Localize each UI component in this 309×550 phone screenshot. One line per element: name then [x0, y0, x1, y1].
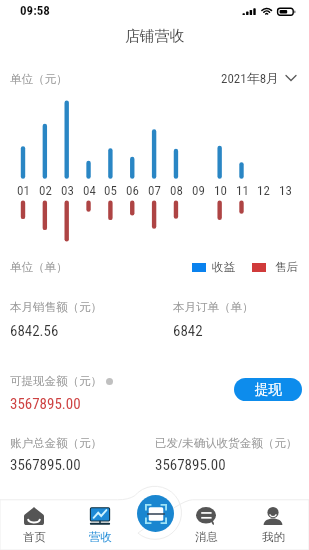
staticText: 12	[257, 183, 270, 198]
staticText: 收益	[212, 260, 235, 274]
button[interactable]: 扫一扫	[137, 495, 174, 532]
staticText: 3567895.00	[155, 456, 226, 474]
staticText: 6842.56	[10, 322, 59, 340]
button[interactable]: 提现	[234, 378, 302, 401]
staticText: 3567895.00	[10, 456, 81, 474]
staticText: 06	[126, 183, 139, 198]
staticText: 07	[148, 183, 161, 198]
staticText: 本月销售额（元）	[10, 300, 102, 314]
staticText: 04	[83, 183, 96, 198]
staticText: 10	[214, 183, 227, 198]
staticText: 营收	[89, 530, 112, 544]
staticText: 03	[61, 183, 74, 198]
staticText: 可提现金额（元）	[10, 374, 102, 388]
staticText: 首页	[23, 530, 46, 544]
staticText: 单位（元）	[10, 72, 68, 86]
staticText: 售后	[275, 260, 298, 274]
staticText: 11	[236, 183, 249, 198]
staticText: 13	[279, 183, 292, 198]
staticText: 05	[104, 183, 117, 198]
staticText: 店铺营收	[125, 27, 185, 46]
staticText: 08	[170, 183, 183, 198]
button[interactable]: 营收	[74, 507, 126, 547]
staticText: 本月订单（单）	[173, 300, 254, 314]
staticText: 已发/未确认收货金额（元）	[155, 436, 298, 450]
button[interactable]: 我的	[247, 507, 299, 547]
button[interactable]: 首页	[8, 507, 60, 547]
staticText: 单位（单）	[10, 260, 68, 274]
button[interactable]: 2021年8月	[217, 65, 300, 91]
staticText: 02	[39, 183, 52, 198]
staticText: 账户总金额（元）	[10, 436, 102, 450]
staticText: 我的	[262, 530, 285, 544]
staticText: 提现	[255, 381, 282, 398]
staticText: 3567895.00	[10, 395, 81, 413]
staticText: 6842	[173, 322, 203, 340]
staticText: 2021年8月	[221, 70, 280, 86]
staticText: 01	[17, 183, 30, 198]
staticText: 09	[192, 183, 205, 198]
staticText: 09:58	[20, 3, 50, 18]
button[interactable]: 消息	[180, 507, 232, 547]
staticText: 消息	[195, 530, 218, 544]
